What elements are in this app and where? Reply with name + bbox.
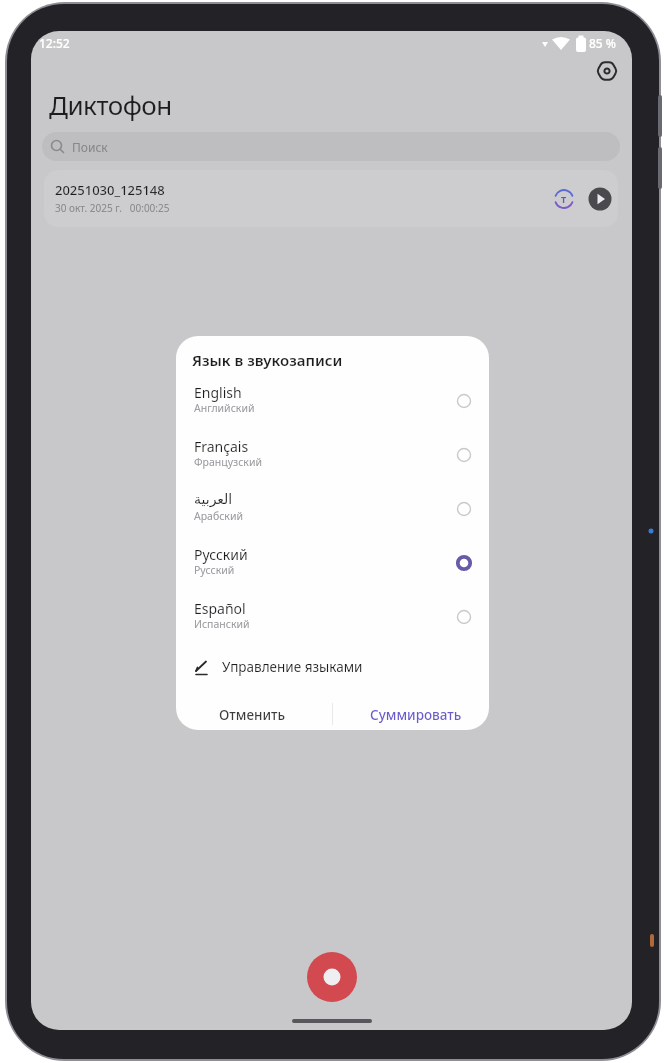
staticText: Español [194,599,246,618]
staticText: Отменить [219,706,286,724]
button[interactable] [588,187,612,211]
staticText: 85 % [589,35,617,51]
staticText: 12:52 [39,35,70,51]
button[interactable]: Суммировать [354,700,478,730]
button[interactable]: English [176,383,489,433]
staticText: T [561,193,567,205]
button[interactable]: 20251030_125148 [44,170,618,227]
button[interactable]: العربية [176,491,489,541]
button[interactable]: Поиск [42,132,620,161]
button[interactable]: Español [176,599,489,649]
button[interactable]: Управление языками [176,653,489,685]
staticText: Русский [194,545,248,564]
staticText: Арабский [194,509,243,523]
staticText: Суммировать [370,706,462,724]
staticText: Французский [194,455,262,469]
staticText: 20251030_125148 [55,181,165,199]
staticText: Английский [194,401,255,415]
button[interactable]: T [553,188,575,210]
staticText: 30 окт. 2025 г. 00:00:25 [55,201,170,215]
staticText: English [194,383,242,402]
staticText: Управление языками [222,658,363,676]
staticText: Поиск [72,139,108,155]
staticText: Язык в звукозаписи [192,350,343,370]
button[interactable] [302,947,362,1007]
staticText: العربية [194,491,233,507]
staticText: Français [194,437,249,456]
button[interactable]: Русский [176,545,489,595]
staticText: Испанский [194,617,250,631]
staticText: Русский [194,563,235,577]
button[interactable]: Отменить [202,700,302,730]
button[interactable]: Français [176,437,489,487]
button[interactable] [593,57,621,85]
staticText: Диктофон [49,87,172,122]
